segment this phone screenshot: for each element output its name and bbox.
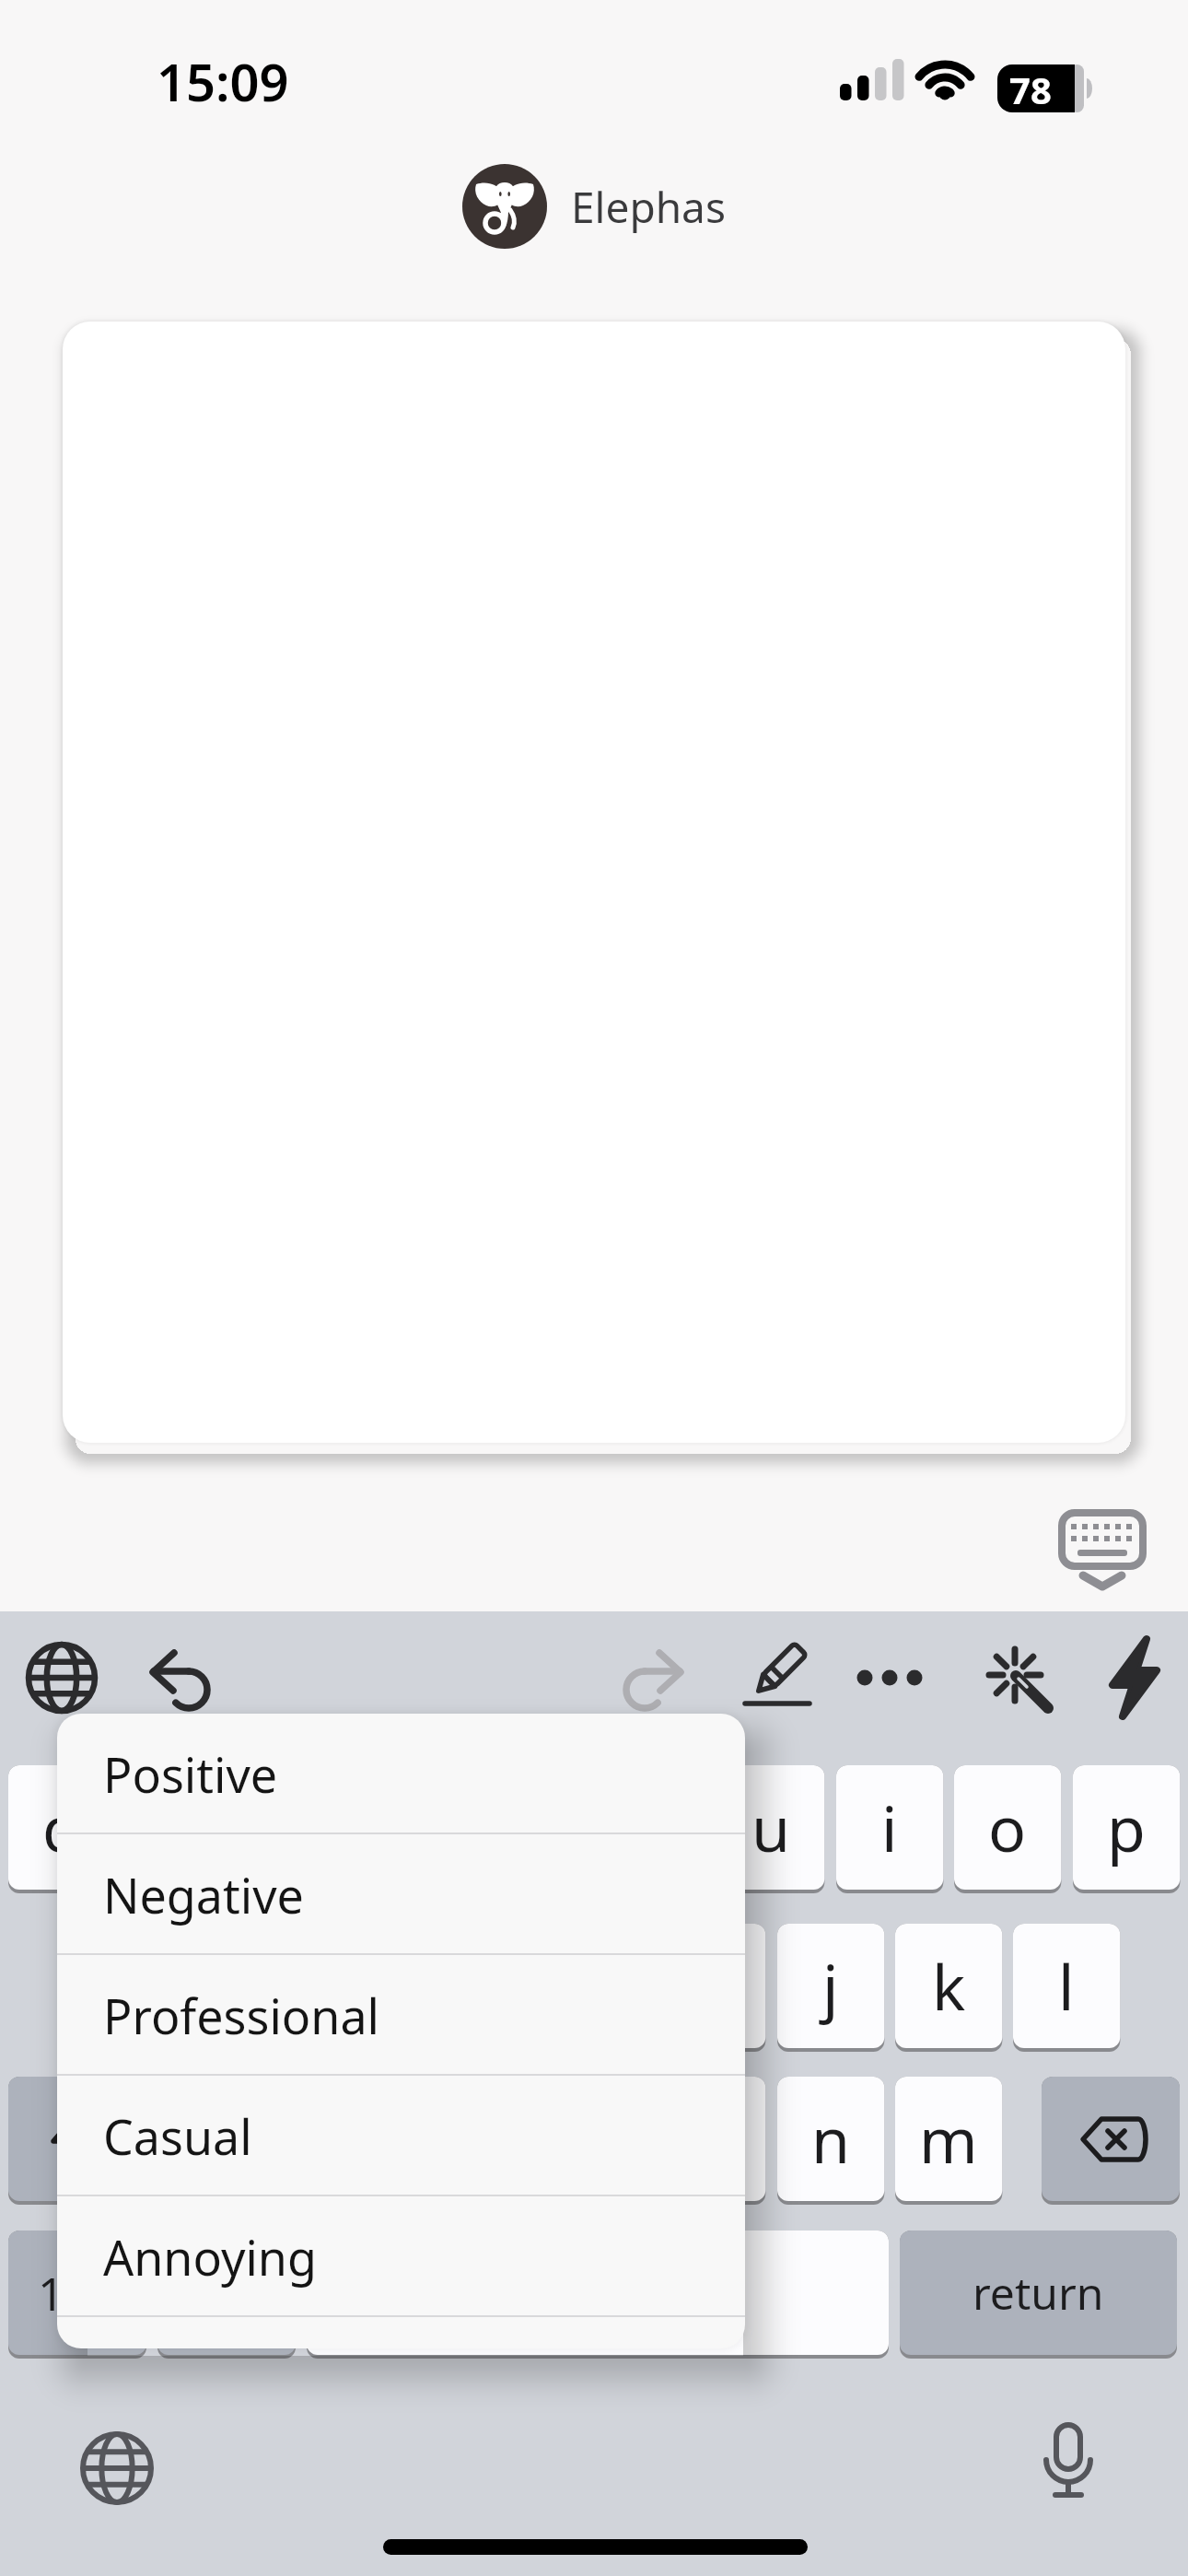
staticText: return [973, 2263, 1104, 2323]
button[interactable]: p [1073, 1765, 1180, 1890]
staticText: j [822, 1943, 839, 2029]
button[interactable]: Negative [57, 1834, 745, 1955]
button[interactable] [16, 1631, 108, 1723]
staticText: Professional [103, 1983, 379, 2048]
button[interactable]: s [186, 1924, 293, 2048]
button[interactable] [8, 2077, 146, 2201]
button[interactable]: q [8, 1765, 115, 1890]
staticText: o [988, 1785, 1027, 1870]
button[interactable]: c [422, 2077, 529, 2201]
button[interactable]: o [954, 1765, 1061, 1890]
staticText: p [1107, 1785, 1146, 1870]
button[interactable]: z [186, 2077, 293, 2201]
button[interactable]: h [658, 1924, 765, 2048]
button[interactable]: i [836, 1765, 943, 1890]
button[interactable]: u [717, 1765, 824, 1890]
button[interactable] [844, 1631, 936, 1723]
button[interactable]: l [1013, 1924, 1120, 2048]
button[interactable]: b [658, 2077, 765, 2201]
button[interactable] [307, 2231, 889, 2355]
staticText: g [575, 1943, 613, 2029]
button[interactable]: g [541, 1924, 647, 2048]
button[interactable]: 123 [8, 2231, 146, 2355]
button[interactable] [604, 1631, 696, 1723]
staticText: a [103, 1943, 139, 2029]
button[interactable]: w [126, 1765, 233, 1890]
staticText: m [919, 2096, 978, 2182]
button[interactable]: Positive [57, 1714, 745, 1834]
button[interactable] [1089, 1631, 1181, 1723]
staticText: 78 [1009, 64, 1052, 112]
button[interactable]: return [900, 2231, 1177, 2355]
button[interactable]: Annoying [57, 2196, 745, 2317]
staticText: e [281, 1785, 317, 1870]
button[interactable]: v [541, 2077, 647, 2201]
button[interactable] [137, 1631, 229, 1723]
staticText: q [42, 1785, 81, 1870]
button[interactable]: k [895, 1924, 1002, 2048]
button[interactable] [1042, 2077, 1180, 2201]
staticText: k [932, 1943, 966, 2029]
staticText: l [1058, 1943, 1075, 2029]
staticText: 123 [38, 2262, 117, 2324]
button[interactable]: d [304, 1924, 411, 2048]
staticText: s [225, 1943, 255, 2029]
staticText: 15:09 [157, 46, 289, 111]
button[interactable] [71, 2422, 163, 2514]
button[interactable] [969, 1631, 1061, 1723]
button[interactable]: n [777, 2077, 884, 2201]
staticText: Annoying [103, 2224, 317, 2289]
staticText: f [464, 1943, 486, 2029]
staticText: d [338, 1943, 377, 2029]
button[interactable]: a [67, 1924, 174, 2048]
staticText: z [225, 2096, 254, 2182]
staticText: t [524, 1785, 547, 1870]
staticText: u [751, 1785, 791, 1870]
staticText: Elephas [571, 178, 726, 236]
button[interactable] [1055, 1502, 1147, 1594]
button[interactable]: f [422, 1924, 529, 2048]
button[interactable] [1022, 2414, 1114, 2515]
button[interactable]: y [600, 1765, 706, 1890]
staticText: w [155, 1785, 204, 1870]
staticText: r [403, 1785, 430, 1870]
button[interactable]: e [245, 1765, 352, 1890]
staticText: Casual [103, 2103, 252, 2169]
button[interactable]: r [363, 1765, 470, 1890]
button[interactable]: Casual [57, 2076, 745, 2196]
staticText: n [811, 2096, 851, 2182]
button[interactable]: Professional [57, 1955, 745, 2076]
button[interactable]: x [304, 2077, 411, 2201]
button[interactable]: m [895, 2077, 1002, 2201]
staticText: y [637, 1785, 670, 1870]
staticText: h [693, 1943, 732, 2029]
staticText: i [881, 1785, 898, 1870]
button[interactable] [462, 164, 547, 249]
staticText: Positive [103, 1741, 278, 1807]
button[interactable] [732, 1631, 824, 1723]
button[interactable] [157, 2231, 296, 2355]
button[interactable]: t [482, 1765, 588, 1890]
staticText: Negative [103, 1862, 304, 1927]
button[interactable]: j [777, 1924, 884, 2048]
